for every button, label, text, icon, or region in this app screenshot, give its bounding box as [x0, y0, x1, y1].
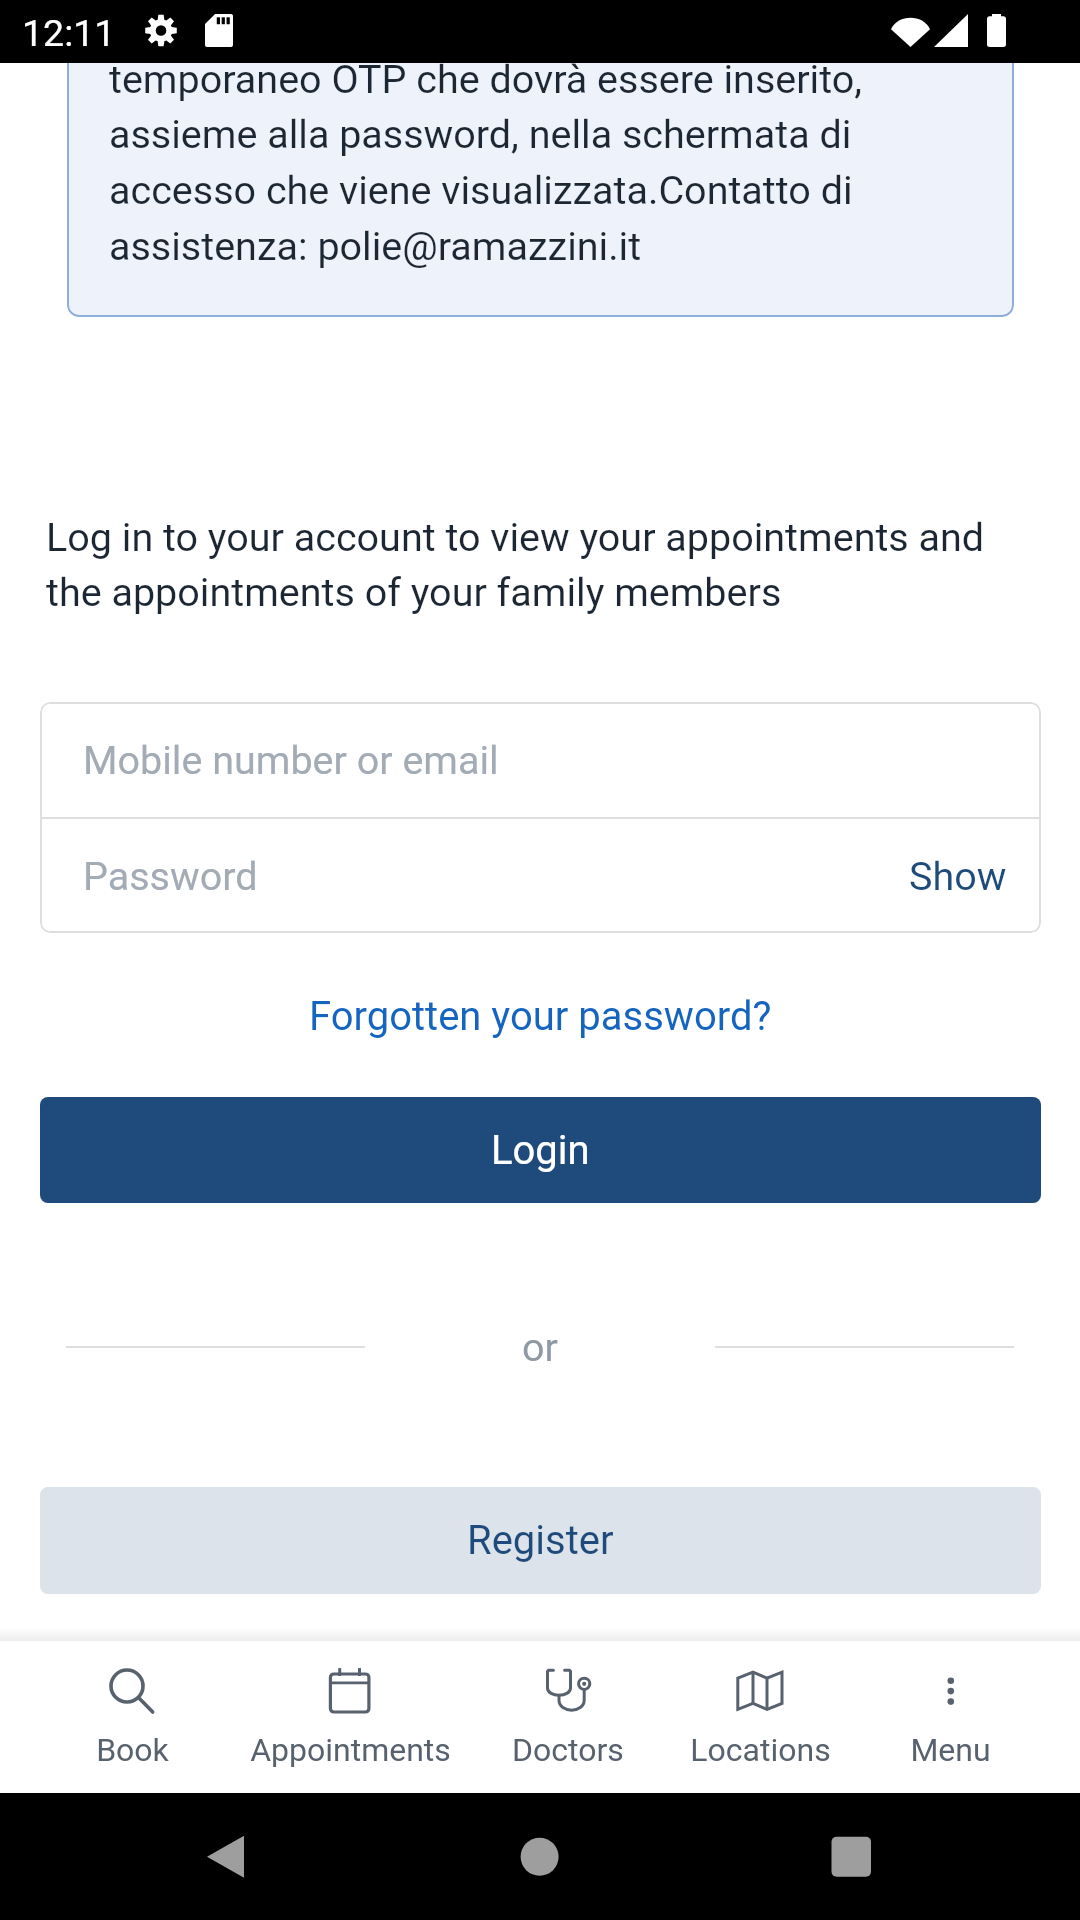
button[interactable]: Mobile number or email [40, 702, 1041, 817]
staticText: Password [83, 853, 258, 899]
staticText: Locations [690, 1731, 831, 1769]
button[interactable]: Book [12, 1641, 252, 1793]
staticText: Appointments [250, 1731, 451, 1769]
button[interactable]: Locations [640, 1641, 880, 1793]
staticText: Login [491, 1127, 590, 1174]
other: Menu [925, 1667, 977, 1719]
staticText: temporaneo OTP che dovrà essere inserito… [109, 56, 919, 270]
staticText: Book [96, 1731, 169, 1769]
staticText: Register [467, 1517, 614, 1564]
staticText: Doctors [512, 1731, 624, 1769]
button[interactable]: Forgotten your password? [289, 981, 792, 1052]
staticText: Mobile number or email [83, 737, 499, 783]
staticText: Menu [910, 1731, 991, 1769]
staticText: Log in to your account to view your appo… [46, 514, 1006, 616]
button[interactable]: Show [875, 819, 1041, 933]
button[interactable]: Login [40, 1097, 1041, 1203]
staticText: 12:11 [22, 11, 116, 55]
staticText: Forgotten your password? [309, 993, 772, 1040]
button[interactable]: Doctors [448, 1641, 688, 1793]
staticText: Show [909, 853, 1007, 899]
button[interactable]: Register [40, 1487, 1041, 1594]
staticText: or [522, 1324, 558, 1370]
button[interactable]: Password [40, 819, 875, 933]
button[interactable]: Menu [830, 1641, 1070, 1793]
button[interactable]: Appointments [230, 1641, 470, 1793]
